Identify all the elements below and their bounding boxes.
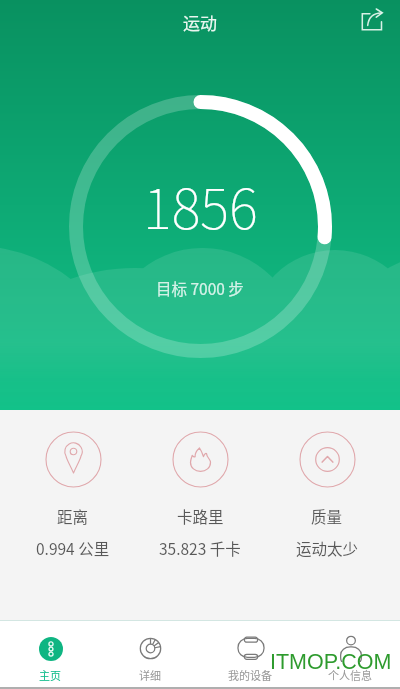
staticText: ITMOP.COM xyxy=(270,650,392,674)
staticText: 0.994 公里 xyxy=(36,537,110,559)
staticText: 卡路里 xyxy=(177,505,224,527)
staticText: 个人信息 xyxy=(328,667,372,683)
staticText: 目标 7000 步 xyxy=(156,277,244,299)
button[interactable]: 我的设备 xyxy=(200,621,300,687)
staticText: 35.823 千卡 xyxy=(159,537,241,559)
button[interactable]: 卡路里 xyxy=(144,431,256,559)
button[interactable]: 距离 xyxy=(17,431,129,559)
staticText: 质量 xyxy=(311,505,343,527)
button[interactable]: Share xyxy=(356,0,400,44)
button[interactable]: 主页 xyxy=(0,621,100,687)
staticText: 我的设备 xyxy=(228,667,272,683)
staticText: 主页 xyxy=(39,667,61,683)
button[interactable]: 个人信息 xyxy=(300,621,400,687)
button[interactable]: 详细 xyxy=(100,621,200,687)
staticText: 运动 xyxy=(183,10,217,35)
staticText: 距离 xyxy=(57,505,89,527)
staticText: 运动太少 xyxy=(296,537,359,559)
button[interactable]: 质量 xyxy=(271,431,383,559)
staticText: 1856 xyxy=(143,165,258,245)
staticText: 详细 xyxy=(139,667,161,683)
